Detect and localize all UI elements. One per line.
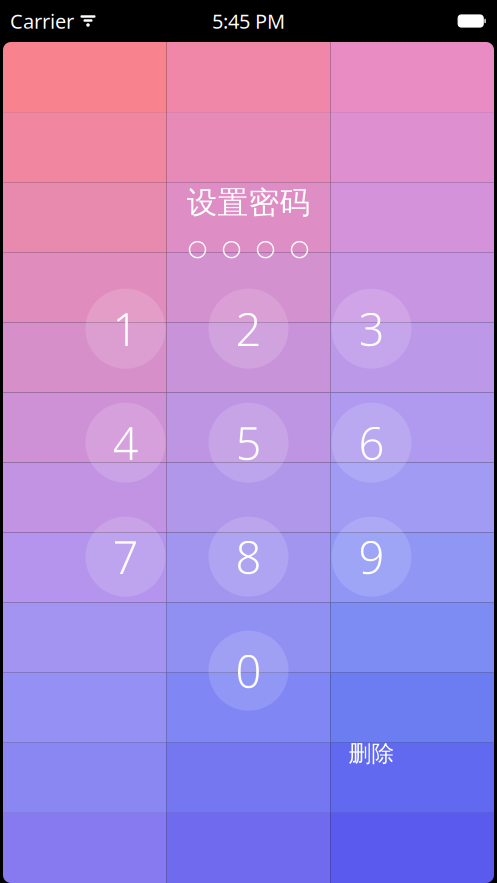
staticText: 8 (235, 527, 261, 587)
button[interactable]: 8 (208, 517, 288, 597)
staticText: 9 (358, 527, 384, 587)
staticText: 0 (235, 641, 261, 701)
button[interactable]: 3 (331, 289, 411, 369)
staticText: Carrier (10, 8, 74, 34)
staticText: 5 (235, 413, 261, 473)
staticText: 2 (235, 299, 261, 359)
button[interactable]: 1 (85, 289, 165, 369)
staticText: 7 (112, 527, 138, 587)
button[interactable]: 4 (85, 403, 165, 483)
button[interactable]: 5 (208, 403, 288, 483)
staticText: 1 (112, 299, 138, 359)
staticText: 删除 (348, 740, 394, 767)
staticText: 5:45 PM (212, 8, 285, 34)
staticText: 6 (358, 413, 384, 473)
staticText: 3 (358, 299, 384, 359)
button[interactable]: 9 (331, 517, 411, 597)
button[interactable]: 6 (331, 403, 411, 483)
button[interactable]: 0 (208, 631, 288, 711)
button[interactable]: 删除 (331, 733, 411, 775)
staticText: 4 (112, 413, 138, 473)
button[interactable]: 2 (208, 289, 288, 369)
button[interactable]: 7 (85, 517, 165, 597)
staticText: 设置密码 (186, 184, 310, 222)
